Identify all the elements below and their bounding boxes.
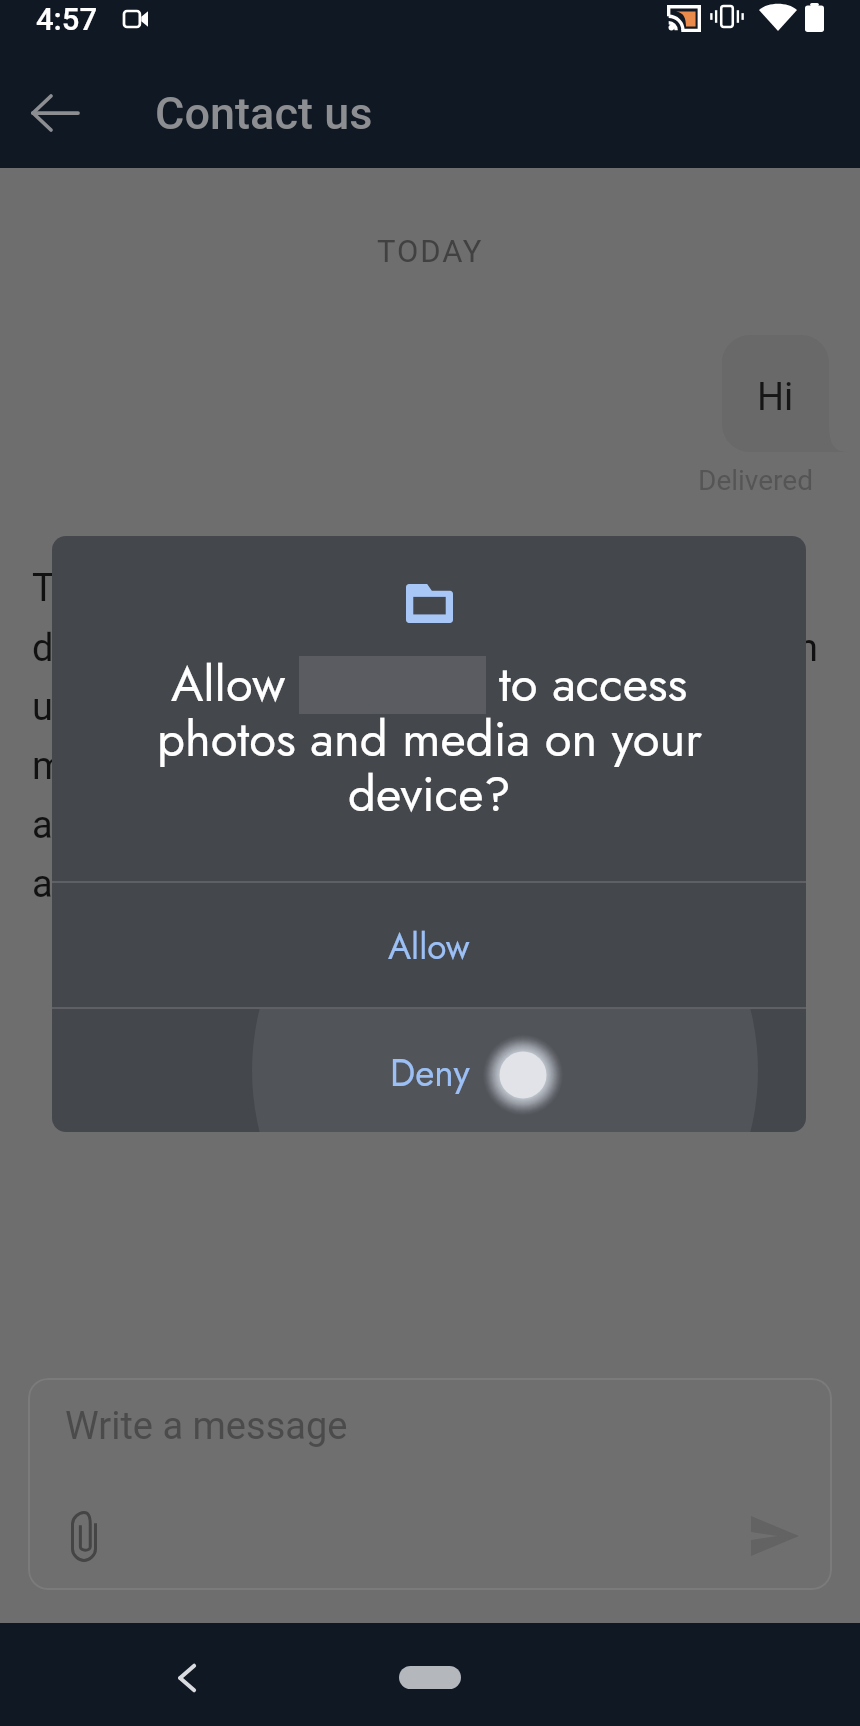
staticText: to access <box>499 649 688 720</box>
button[interactable]: Navigate up <box>0 58 110 168</box>
staticText: Thank you for contacting our customer ca… <box>32 566 818 906</box>
staticText: Contact us <box>155 87 373 140</box>
button[interactable]: Allow <box>52 883 806 1007</box>
staticText: Allow <box>388 922 470 973</box>
button[interactable]: Send message <box>733 1494 817 1578</box>
button[interactable]: Home <box>399 1666 461 1689</box>
staticText: TODAY <box>377 233 484 269</box>
staticText: Hi <box>757 375 794 420</box>
staticText: photos and media on your <box>157 704 702 775</box>
button[interactable]: Attach file <box>42 1494 126 1578</box>
button[interactable]: Back <box>145 1635 231 1721</box>
staticText: Write a message <box>65 1404 348 1449</box>
staticText: Deny <box>390 1046 470 1099</box>
button[interactable]: Deny <box>52 1009 806 1132</box>
staticText: Delivered <box>698 464 813 497</box>
staticText: 4:57 <box>36 1 98 37</box>
staticText: device? <box>348 759 511 830</box>
staticText: Allow <box>171 649 286 720</box>
